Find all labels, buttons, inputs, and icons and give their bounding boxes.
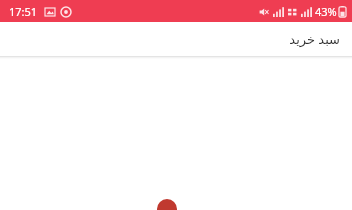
button[interactable]: سبد خرید (0, 22, 352, 56)
staticText: 43% (315, 4, 337, 19)
staticText: 17:51 (9, 4, 38, 19)
staticText: سبد خرید (289, 30, 340, 48)
